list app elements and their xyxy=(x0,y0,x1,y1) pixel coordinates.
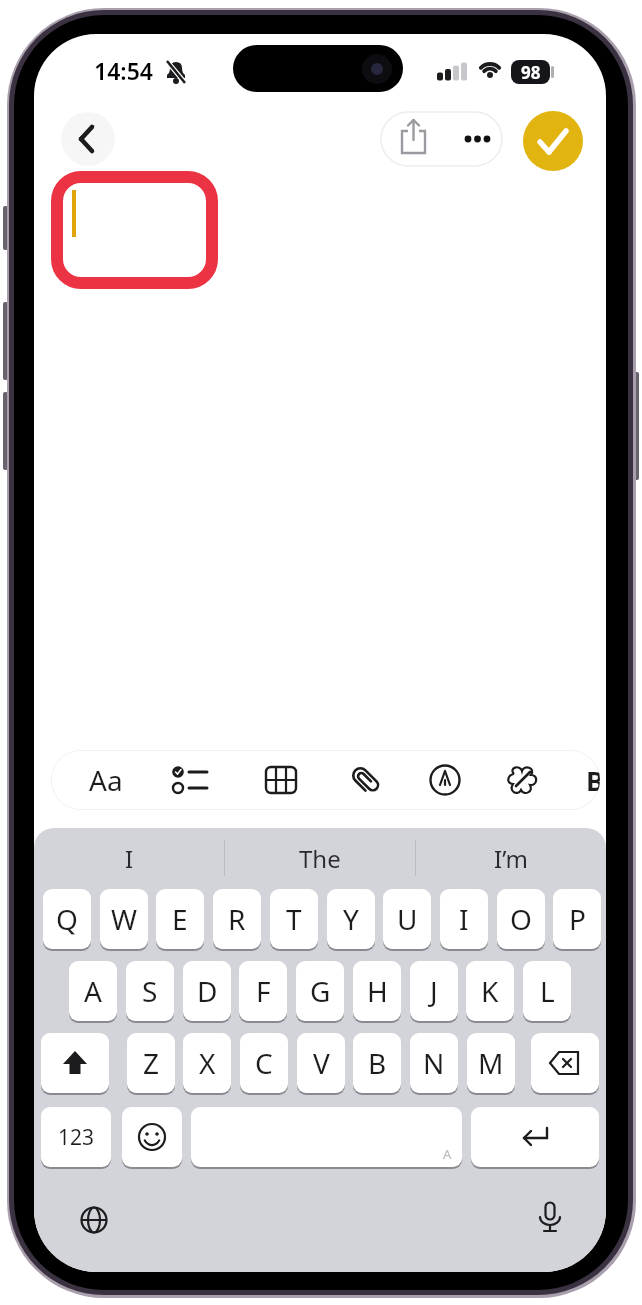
staticText: The xyxy=(299,842,341,875)
staticText: I xyxy=(125,842,134,875)
staticText: C xyxy=(255,1044,273,1082)
staticText: R xyxy=(228,900,246,938)
button[interactable] xyxy=(457,112,502,166)
button[interactable]: Y xyxy=(327,889,375,949)
staticText: L xyxy=(540,972,555,1010)
staticText: U xyxy=(397,900,418,938)
staticText: H xyxy=(367,972,388,1010)
button[interactable]: W xyxy=(100,889,148,949)
staticText: O xyxy=(510,900,532,938)
button[interactable]: O xyxy=(497,889,545,949)
staticText: 123 xyxy=(58,1123,95,1152)
staticText: E xyxy=(172,900,188,938)
staticText: A xyxy=(443,1145,452,1163)
staticText: Y xyxy=(343,900,359,938)
staticText: A xyxy=(84,972,102,1010)
button[interactable] xyxy=(74,1200,114,1240)
button[interactable]: P xyxy=(553,889,601,949)
staticText: B xyxy=(368,1044,387,1082)
staticText: B xyxy=(586,762,600,799)
button[interactable] xyxy=(417,750,473,810)
button[interactable]: E xyxy=(156,889,204,949)
button[interactable]: L xyxy=(523,961,571,1021)
button[interactable]: I xyxy=(34,828,224,888)
button[interactable]: H xyxy=(353,961,401,1021)
button[interactable]: A xyxy=(191,1107,462,1167)
button[interactable] xyxy=(531,1033,599,1093)
button[interactable] xyxy=(122,1107,182,1167)
button[interactable]: K xyxy=(466,961,514,1021)
button[interactable] xyxy=(61,112,115,166)
staticText: N xyxy=(423,1044,445,1082)
button[interactable] xyxy=(253,750,309,810)
button[interactable]: 123 xyxy=(41,1107,111,1167)
button[interactable]: Aa xyxy=(78,750,134,810)
button[interactable] xyxy=(41,1033,109,1093)
staticText: D xyxy=(197,972,218,1010)
button[interactable]: X xyxy=(183,1033,231,1093)
button[interactable] xyxy=(471,1107,599,1167)
staticText: K xyxy=(481,972,499,1010)
button[interactable] xyxy=(495,750,551,810)
button[interactable]: I’m xyxy=(416,828,606,888)
staticText: 98 xyxy=(521,61,541,84)
button[interactable]: M xyxy=(467,1033,515,1093)
staticText: S xyxy=(142,972,158,1010)
button[interactable]: Z xyxy=(127,1033,175,1093)
button[interactable]: B xyxy=(573,750,600,810)
button[interactable]: N xyxy=(410,1033,458,1093)
button[interactable]: D xyxy=(183,961,231,1021)
staticText: Aa xyxy=(89,761,123,799)
button[interactable]: R xyxy=(213,889,261,949)
staticText: W xyxy=(111,900,138,938)
button[interactable] xyxy=(391,112,436,166)
button[interactable]: G xyxy=(296,961,344,1021)
button[interactable] xyxy=(523,111,583,171)
button[interactable]: I xyxy=(440,889,488,949)
staticText: J xyxy=(430,972,438,1010)
staticText: Z xyxy=(143,1044,160,1082)
button[interactable]: F xyxy=(239,961,287,1021)
button[interactable]: B xyxy=(353,1033,401,1093)
button[interactable]: T xyxy=(270,889,318,949)
button[interactable]: S xyxy=(126,961,174,1021)
button[interactable]: V xyxy=(297,1033,345,1093)
button[interactable]: The xyxy=(225,828,415,888)
staticText: F xyxy=(256,972,271,1010)
staticText: M xyxy=(478,1044,504,1082)
staticText: I’m xyxy=(494,842,529,875)
staticText: 14:54 xyxy=(94,55,153,86)
staticText: V xyxy=(313,1044,330,1082)
staticText: I xyxy=(459,900,469,938)
button[interactable] xyxy=(530,1198,570,1238)
button[interactable]: J xyxy=(410,961,458,1021)
button[interactable]: U xyxy=(383,889,431,949)
staticText: G xyxy=(310,972,331,1010)
staticText: T xyxy=(286,900,302,938)
staticText: Q xyxy=(56,900,78,938)
staticText: X xyxy=(199,1044,216,1082)
button[interactable]: A xyxy=(69,961,117,1021)
button[interactable] xyxy=(164,750,220,810)
button[interactable]: C xyxy=(240,1033,288,1093)
button[interactable] xyxy=(337,750,393,810)
button[interactable]: Q xyxy=(43,889,91,949)
staticText: P xyxy=(569,900,586,938)
